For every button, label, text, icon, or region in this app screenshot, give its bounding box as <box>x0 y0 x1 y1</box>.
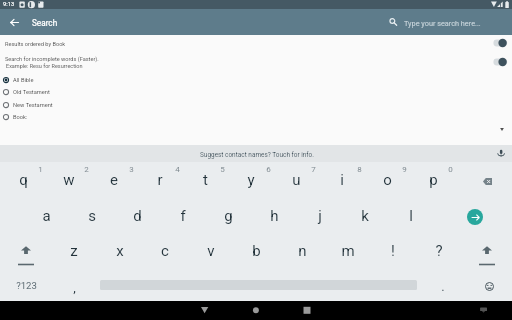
button[interactable]: Voice input <box>492 145 510 162</box>
button[interactable] <box>46 163 92 197</box>
button[interactable]: Emoji <box>467 269 511 303</box>
staticText: q <box>19 171 28 189</box>
staticText: i <box>340 171 344 189</box>
staticText: a <box>42 207 51 225</box>
button[interactable] <box>114 199 160 233</box>
staticText: e <box>110 171 118 189</box>
button[interactable]: Period <box>420 269 466 303</box>
button[interactable] <box>23 199 69 233</box>
button[interactable]: Space <box>98 270 419 298</box>
button[interactable] <box>51 234 97 268</box>
button[interactable] <box>142 234 188 268</box>
staticText: 9:13 <box>3 1 15 8</box>
staticText: Type your search here... <box>404 19 481 28</box>
staticText: Book: <box>13 114 28 121</box>
button[interactable] <box>388 199 434 233</box>
staticText: 5 <box>220 165 225 174</box>
staticText: k <box>361 207 369 225</box>
staticText: n <box>298 242 307 260</box>
staticText: 2 <box>84 165 89 174</box>
button[interactable] <box>233 234 279 268</box>
button[interactable] <box>416 234 462 268</box>
staticText: b <box>252 242 261 260</box>
staticText: x <box>116 242 124 260</box>
button[interactable]: Back <box>193 301 217 320</box>
button[interactable] <box>370 234 416 268</box>
button[interactable] <box>228 163 274 197</box>
button[interactable]: Backspace <box>465 163 509 197</box>
staticText: Example: Resu for Resurrection <box>6 63 83 69</box>
button[interactable]: Symbols <box>3 269 49 303</box>
staticText: ?123 <box>16 280 37 291</box>
button[interactable] <box>364 163 410 197</box>
staticText: z <box>70 242 78 260</box>
staticText: l <box>409 207 413 225</box>
staticText: g <box>224 207 233 225</box>
button[interactable] <box>97 234 143 268</box>
staticText: Search for incomplete words (Faster). <box>5 56 99 63</box>
button[interactable] <box>188 234 234 268</box>
button[interactable] <box>91 163 137 197</box>
button[interactable]: Search field <box>384 11 510 33</box>
staticText: v <box>207 242 215 260</box>
button[interactable]: Toggle <box>487 52 509 72</box>
staticText: , <box>73 280 76 295</box>
staticText: 3 <box>129 165 134 174</box>
staticText: All Bible <box>13 77 34 84</box>
staticText: 4 <box>175 165 180 174</box>
staticText: Old Testament <box>13 89 50 96</box>
staticText: 8 <box>357 165 362 174</box>
staticText: m <box>341 242 355 260</box>
button[interactable]: Shift <box>464 234 510 268</box>
button[interactable] <box>69 199 115 233</box>
button[interactable] <box>0 163 46 197</box>
button[interactable] <box>325 234 371 268</box>
button[interactable] <box>342 199 388 233</box>
staticText: New Testament <box>13 102 53 109</box>
button[interactable]: Enter <box>452 199 498 233</box>
button[interactable]: Toggle <box>487 33 509 53</box>
button[interactable]: Hide keyboard <box>474 301 494 320</box>
staticText: t <box>203 171 208 189</box>
button[interactable] <box>279 234 325 268</box>
button[interactable] <box>160 199 206 233</box>
button[interactable] <box>0 74 512 86</box>
staticText: ? <box>435 242 443 260</box>
button[interactable] <box>137 163 183 197</box>
button[interactable] <box>0 145 512 162</box>
staticText: 1 <box>38 165 43 174</box>
staticText: w <box>63 171 75 189</box>
staticText: y <box>247 171 255 189</box>
button[interactable] <box>0 86 512 98</box>
staticText: 7 <box>311 165 316 174</box>
staticText: 0 <box>448 165 453 174</box>
staticText: u <box>292 171 301 189</box>
staticText: c <box>161 242 169 260</box>
staticText: Suggest contact names? Touch for info. <box>200 151 314 159</box>
staticText: Results ordered by Book <box>5 41 66 48</box>
staticText: r <box>157 171 163 189</box>
button[interactable]: Expand <box>492 119 512 139</box>
button[interactable]: Recent apps <box>295 301 319 320</box>
staticText: j <box>318 207 322 225</box>
staticText: s <box>88 207 96 225</box>
staticText: 9 <box>402 165 407 174</box>
button[interactable]: Shift <box>3 234 49 268</box>
button[interactable] <box>182 163 228 197</box>
button[interactable] <box>410 163 456 197</box>
button[interactable] <box>0 99 512 111</box>
button[interactable]: Home <box>244 301 268 320</box>
button[interactable] <box>273 163 319 197</box>
staticText: ! <box>391 242 395 260</box>
button[interactable]: Comma <box>51 269 97 303</box>
staticText: Search <box>32 18 58 28</box>
button[interactable] <box>251 199 297 233</box>
staticText: p <box>429 171 438 189</box>
button[interactable] <box>0 111 512 123</box>
button[interactable] <box>297 199 343 233</box>
staticText: . <box>441 279 445 294</box>
button[interactable]: Back <box>2 10 26 34</box>
button[interactable] <box>319 163 365 197</box>
button[interactable] <box>205 199 251 233</box>
staticText: o <box>383 171 392 189</box>
